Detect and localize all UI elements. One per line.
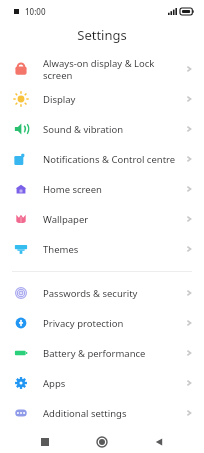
button[interactable]: Passwords & security (0, 278, 204, 308)
staticText: Privacy protection (43, 317, 178, 330)
staticText: Sound & vibration (43, 123, 178, 136)
staticText: Wallpaper (43, 213, 178, 226)
button[interactable]: Home (91, 431, 113, 453)
button[interactable]: Themes (0, 234, 204, 264)
button[interactable]: Wallpaper (0, 204, 204, 234)
staticText: Notifications & Control centre (43, 153, 178, 166)
staticText: Passwords & security (43, 287, 178, 300)
staticText: Settings (77, 26, 127, 44)
button[interactable]: Always-on display & Lock screen (0, 54, 204, 84)
staticText: Apps (43, 377, 178, 390)
staticText: Home screen (43, 183, 178, 196)
staticText: Display (43, 93, 178, 106)
button[interactable]: Battery & performance (0, 338, 204, 368)
button[interactable]: Display (0, 84, 204, 114)
staticText: Additional settings (43, 407, 178, 420)
button[interactable]: Back (148, 431, 170, 453)
staticText: Battery & performance (43, 347, 178, 360)
button[interactable]: Additional settings (0, 398, 204, 428)
staticText: 10:00 (25, 6, 46, 17)
button[interactable]: Home screen (0, 174, 204, 204)
button[interactable]: Recents (34, 431, 56, 453)
staticText: Always-on display & Lock screen (43, 57, 178, 82)
button[interactable]: Sound & vibration (0, 114, 204, 144)
button[interactable]: Notifications & Control centre (0, 144, 204, 174)
button[interactable]: Apps (0, 368, 204, 398)
button[interactable]: Privacy protection (0, 308, 204, 338)
staticText: Themes (43, 243, 178, 256)
